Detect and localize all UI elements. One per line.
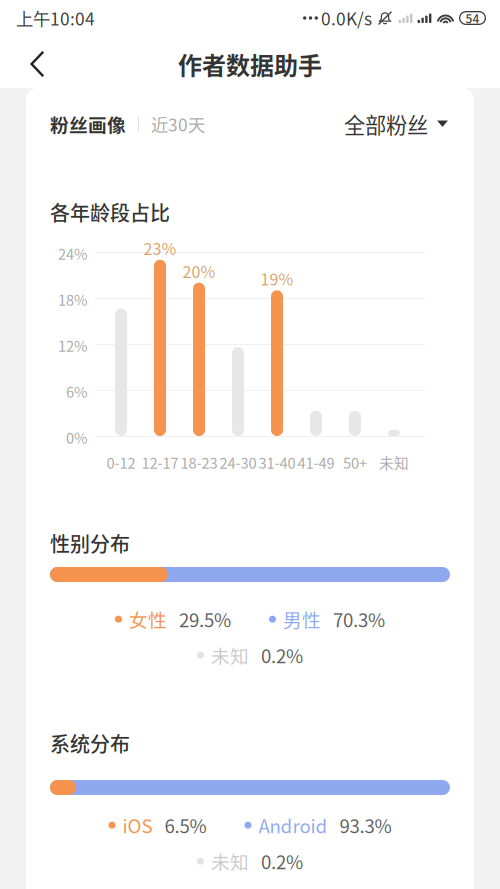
staticText: 12-17 xyxy=(141,452,178,473)
staticText: 50+ xyxy=(343,452,367,473)
staticText: 粉丝画像 xyxy=(50,111,126,137)
staticText: Android xyxy=(258,812,327,838)
staticText: 6% xyxy=(66,381,88,402)
staticText: 近30天 xyxy=(151,112,205,136)
staticText: 0% xyxy=(66,427,88,448)
staticText: 各年龄段占比 xyxy=(50,198,170,226)
staticText: 19% xyxy=(260,267,293,290)
staticText: 作者数据助手 xyxy=(178,47,322,81)
button[interactable]: 全部粉丝 xyxy=(342,99,450,149)
staticText: 41-49 xyxy=(297,452,334,473)
staticText: 全部粉丝 xyxy=(344,109,428,139)
staticText: 0.2% xyxy=(261,642,303,668)
staticText: 上午10:04 xyxy=(16,6,95,30)
staticText: 0.0K/s xyxy=(321,6,372,30)
staticText: 20% xyxy=(182,260,215,282)
staticText: 54 xyxy=(465,9,479,26)
staticText: 6.5% xyxy=(164,812,206,838)
staticText: 29.5% xyxy=(179,606,231,632)
staticText: 24-30 xyxy=(219,452,256,473)
staticText: 18% xyxy=(58,289,88,310)
staticText: 女性 xyxy=(129,606,167,632)
staticText: 性别分布 xyxy=(50,529,130,557)
staticText: 18-23 xyxy=(180,452,217,473)
staticText: 24% xyxy=(58,243,88,264)
staticText: 男性 xyxy=(283,606,321,632)
staticText: 未知 xyxy=(211,642,249,668)
staticText: 31-40 xyxy=(258,452,295,473)
staticText: iOS xyxy=(122,812,152,838)
staticText: 系统分布 xyxy=(50,729,130,757)
staticText: 未知 xyxy=(211,848,249,874)
staticText: 0-12 xyxy=(106,452,135,473)
staticText: 0.2% xyxy=(261,848,303,874)
staticText: 23% xyxy=(143,237,176,259)
button[interactable]: 返回 xyxy=(0,39,63,89)
staticText: 93.3% xyxy=(339,812,391,838)
staticText: 12% xyxy=(58,335,88,356)
staticText: 未知 xyxy=(379,452,409,473)
staticText: 70.3% xyxy=(333,606,385,632)
